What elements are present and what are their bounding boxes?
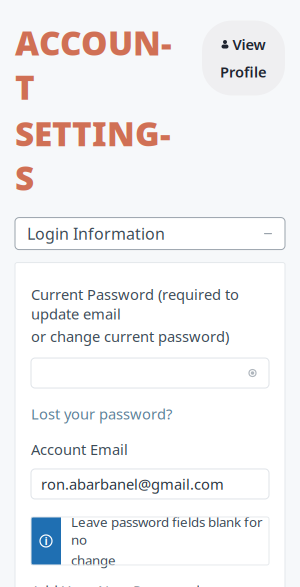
staticText: Profile (220, 62, 267, 81)
staticText: Add Your New Password (31, 581, 200, 587)
staticText: Leave password fields blank for no (71, 513, 263, 548)
staticText: ACCOUNT (15, 20, 172, 109)
staticText: or change current password) (31, 327, 229, 346)
button[interactable]: View (202, 20, 285, 95)
staticText: View (232, 34, 265, 54)
staticText: Login Information (27, 223, 165, 244)
staticText: i (44, 534, 47, 548)
staticText: SETTINGS (15, 111, 171, 200)
button[interactable]: Lost your password? (31, 404, 172, 423)
staticText: Current Password (required to update ema… (31, 285, 239, 324)
button[interactable]: Login Information (15, 218, 285, 250)
staticText: Account Email (31, 439, 128, 459)
staticText: ron.abarbanel@gmail.com (41, 474, 224, 494)
staticText: change (71, 551, 116, 569)
staticText: Lost your password? (31, 404, 172, 423)
